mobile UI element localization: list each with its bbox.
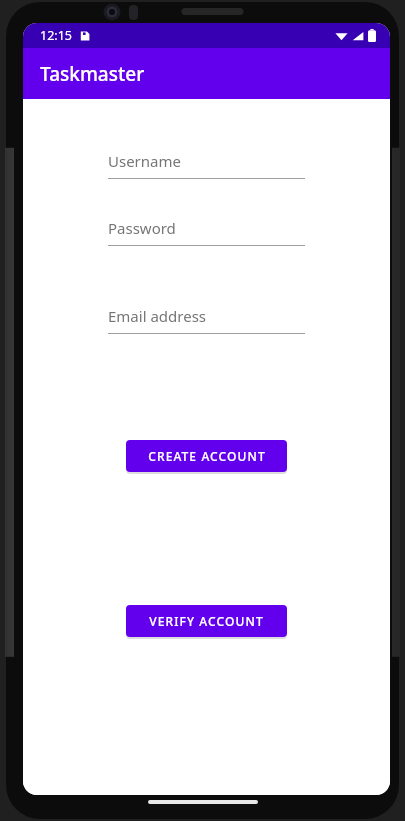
button[interactable]: VERIFY ACCOUNT: [126, 605, 287, 637]
staticText: 12:15: [40, 27, 72, 44]
staticText: Email address: [108, 306, 207, 326]
button[interactable]: CREATE ACCOUNT: [126, 440, 287, 472]
staticText: CREATE ACCOUNT: [148, 448, 266, 464]
button[interactable]: Email address: [23, 306, 390, 334]
button[interactable]: Username: [23, 151, 390, 179]
staticText: Taskmaster: [40, 61, 145, 87]
staticText: Username: [108, 151, 181, 171]
button[interactable]: Password: [23, 218, 390, 246]
staticText: VERIFY ACCOUNT: [149, 613, 264, 629]
staticText: Password: [108, 218, 176, 238]
